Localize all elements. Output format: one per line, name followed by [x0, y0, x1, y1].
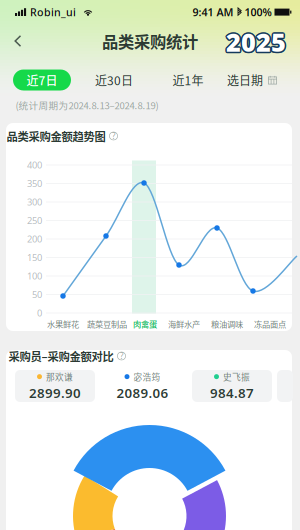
- staticText: 近30日: [95, 71, 133, 89]
- staticText: 400: [27, 159, 42, 171]
- staticText: 品类采购金额趋势图: [6, 128, 105, 144]
- staticText: 水果鲜花: [47, 318, 79, 330]
- staticText: 2025: [226, 25, 286, 59]
- staticText: 海鲜水产: [168, 318, 200, 330]
- staticText: 2899.90: [29, 384, 81, 402]
- staticText: Robin_ui: [30, 5, 76, 19]
- staticText: 品类采购统计: [102, 29, 198, 53]
- staticText: 粮油调味: [211, 318, 243, 330]
- staticText: 250: [27, 214, 42, 227]
- button[interactable]: 那欢谦: [15, 370, 95, 402]
- staticText: 2025: [225, 24, 285, 58]
- staticText: 200: [27, 233, 42, 245]
- staticText: 9:41 AM: [192, 5, 233, 19]
- staticText: 0: [37, 307, 42, 319]
- button[interactable]: 选日期: [227, 69, 277, 90]
- staticText: 300: [27, 196, 42, 208]
- staticText: 2025: [227, 25, 287, 59]
- button[interactable]: 采购员–采购金额对比: [8, 348, 125, 364]
- staticText: 984.87: [210, 384, 254, 402]
- staticText: 肉禽蛋: [133, 318, 157, 330]
- staticText: 冻品面点: [254, 318, 286, 330]
- staticText: 150: [27, 251, 42, 264]
- button[interactable]: Back: [6, 27, 30, 55]
- staticText: 宓浩筠: [133, 370, 160, 383]
- staticText: 选日期: [227, 71, 263, 89]
- staticText: 100%: [244, 5, 271, 19]
- staticText: 2025: [224, 25, 284, 59]
- staticText: 近1年: [172, 71, 203, 89]
- staticText: (统计周期为2024.8.13–2024.8.19): [15, 98, 158, 112]
- staticText: 100: [27, 270, 42, 282]
- button[interactable]: 史飞振: [192, 370, 272, 402]
- staticText: 50: [32, 288, 42, 301]
- staticText: 采购员–采购金额对比: [8, 348, 113, 364]
- staticText: 蔬菜豆制品: [87, 318, 127, 330]
- staticText: ?: [112, 131, 115, 141]
- button[interactable]: 近7日: [13, 69, 71, 90]
- staticText: ?: [120, 351, 123, 361]
- staticText: 2025: [226, 27, 286, 60]
- button[interactable]: 品类采购金额趋势图: [6, 128, 117, 144]
- staticText: 2025: [227, 26, 287, 60]
- staticText: 近7日: [26, 71, 57, 89]
- staticText: 2089.06: [116, 384, 168, 402]
- staticText: 史飞振: [223, 370, 250, 383]
- staticText: 2025: [226, 24, 286, 57]
- staticText: 2025: [225, 26, 285, 60]
- staticText: 那欢谦: [46, 370, 73, 383]
- staticText: 350: [27, 177, 42, 190]
- button[interactable]: 近1年: [167, 69, 209, 90]
- staticText: 2025: [227, 24, 287, 58]
- button[interactable]: 近30日: [89, 69, 139, 90]
- button[interactable]: 宓浩筠: [102, 370, 183, 402]
